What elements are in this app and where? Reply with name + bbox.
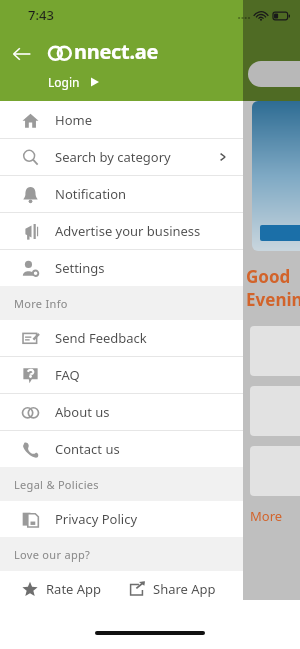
button[interactable]: More [250,507,283,525]
button[interactable]: Search [248,61,300,87]
staticText: Share App [153,580,216,598]
staticText: Rate App [46,580,102,598]
staticText: nnect.ae [74,38,159,65]
button[interactable] [260,225,300,241]
staticText: FAQ [55,366,80,384]
button[interactable]: Back [10,42,34,66]
button[interactable]: Contact us [0,431,243,467]
button[interactable]: Search by category [0,139,243,175]
button[interactable]: FAQ [0,357,243,393]
button[interactable]: Notification [0,176,243,212]
staticText: 7:43 [28,6,54,24]
staticText: Send Feedback [55,329,147,347]
staticText: Privacy Policy [55,510,138,528]
staticText: Legal & Policies [14,477,99,492]
button[interactable]: Send Feedback [0,320,243,356]
staticText: Home [55,111,92,129]
button[interactable]: Advertise your business [0,213,243,249]
button[interactable]: Login [48,74,100,90]
button[interactable]: Privacy Policy [0,501,243,537]
staticText: Evening [246,288,300,311]
button[interactable]: Settings [0,250,243,286]
staticText: More Info [14,296,68,311]
button[interactable]: About us [0,394,243,430]
staticText: Love our app? [14,547,91,562]
staticText: Contact us [55,440,120,458]
staticText: Settings [55,259,105,277]
staticText: Good [246,265,291,288]
staticText: Advertise your business [55,222,201,240]
button[interactable]: Share App [121,571,243,607]
staticText: About us [55,403,110,421]
button[interactable]: Home [0,102,243,138]
button[interactable]: Rate App [0,571,121,607]
staticText: Notification [55,185,127,203]
staticText: Search by category [55,148,171,166]
staticText: Login [48,74,80,90]
